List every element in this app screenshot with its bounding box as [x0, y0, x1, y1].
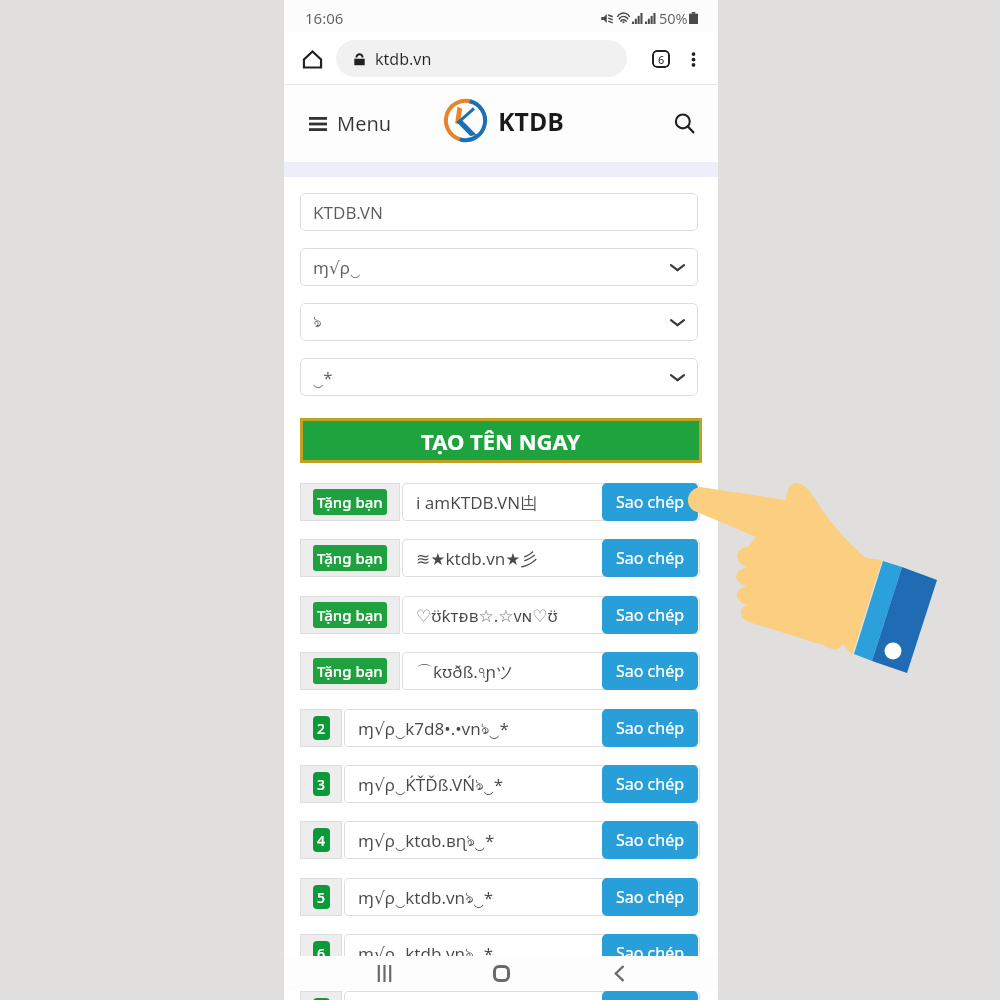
button[interactable]: Tặng bạn — [300, 596, 400, 634]
button[interactable]: Recents — [364, 956, 404, 990]
staticText: ঌ — [313, 314, 322, 331]
button[interactable]: Sao chép — [602, 483, 698, 521]
staticText: 2 — [317, 719, 326, 738]
button[interactable]: Back — [599, 956, 639, 990]
staticText: Sao chép — [616, 491, 685, 513]
button[interactable]: Home — [481, 956, 521, 990]
button[interactable]: Search — [669, 108, 699, 138]
button[interactable]: ♡ʊ̈ƙтᴆʙ☆.☆ᴠɴ♡ʊ̈ — [402, 596, 700, 634]
staticText: Sao chép — [616, 717, 685, 739]
button[interactable]: Sao chép — [602, 652, 698, 690]
button[interactable]: Sao chép — [602, 821, 698, 859]
button[interactable]: 6 — [300, 934, 342, 972]
button[interactable]: Sao chép — [602, 539, 698, 577]
staticText: i amKTDB.VN凷 — [416, 491, 538, 514]
button[interactable]: Sao chép — [602, 934, 698, 972]
staticText: KTDB.VN — [313, 201, 383, 224]
staticText: Sao chép — [616, 886, 685, 908]
button[interactable]: ঌ — [300, 303, 698, 341]
button[interactable]: Tabs — [648, 46, 674, 72]
staticText: 5 — [317, 888, 326, 907]
staticText: Menu — [337, 110, 392, 137]
button[interactable]: ⌒ƙʊðß.ঀɲツ — [402, 652, 700, 690]
staticText: Tặng bạn — [317, 605, 383, 625]
staticText: KTDB — [498, 104, 564, 138]
button[interactable]: Menu — [309, 110, 392, 137]
staticText: 16:06 — [305, 8, 344, 28]
button[interactable]: Tặng bạn — [300, 539, 400, 577]
staticText: Sao chép — [616, 829, 685, 851]
staticText: Sao chép — [616, 942, 685, 964]
button[interactable]: ɱ√ρ‿ktdb.vnঌ‿* — [344, 991, 700, 1000]
staticText: 50% — [659, 8, 688, 28]
staticText: ɱ√ρ‿k7d8•.•vnঌ‿* — [358, 717, 509, 740]
button[interactable]: KTDB.VN — [300, 193, 698, 231]
button[interactable]: Home — [296, 43, 328, 75]
staticText: Sao chép — [616, 547, 685, 569]
button[interactable]: 4 — [300, 821, 342, 859]
staticText: 3 — [317, 775, 326, 794]
staticText: Tặng bạn — [317, 661, 383, 681]
button[interactable]: ɱ√ρ‿ktdb.vnঌ‿* — [344, 878, 700, 916]
staticText: ɱ√ρ‿ — [313, 256, 361, 279]
button[interactable]: ɱ√ρ‿ḰŤĎß.VŃঌ‿* — [344, 765, 700, 803]
button[interactable]: Sao chép — [602, 878, 698, 916]
button[interactable]: Tặng bạn — [300, 652, 400, 690]
button[interactable]: 2 — [300, 709, 342, 747]
button[interactable]: Sao chép — [602, 596, 698, 634]
button[interactable]: Tặng bạn — [300, 483, 400, 521]
button[interactable]: ɱ√ρ‿ — [300, 248, 698, 286]
button[interactable]: TẠO TÊN NGAY — [303, 421, 699, 460]
button[interactable]: ktdb.vn — [336, 40, 627, 77]
staticText: 6 — [317, 944, 326, 963]
button[interactable]: Sao chép — [602, 765, 698, 803]
staticText: ≋★ktdb.vn★彡 — [416, 547, 538, 570]
button[interactable]: Sao chép — [602, 991, 698, 1000]
staticText: Tặng bạn — [317, 492, 383, 512]
staticText: 6 — [658, 52, 665, 67]
staticText: Tặng bạn — [317, 548, 383, 568]
staticText: ⌒ƙʊðß.ঀɲツ — [416, 660, 514, 683]
staticText: TẠO TÊN NGAY — [421, 426, 581, 456]
button[interactable]: ɱ√ρ‿k7d8•.•vnঌ‿* — [344, 709, 700, 747]
staticText: 4 — [317, 831, 326, 850]
button[interactable]: Sao chép — [602, 709, 698, 747]
staticText: ɱ√ρ‿ktdb.vnঌ‿* — [358, 886, 494, 909]
staticText: ktdb.vn — [375, 48, 432, 70]
button[interactable]: 7 — [300, 991, 342, 1000]
staticText: Sao chép — [616, 604, 685, 626]
staticText: ɱ√ρ‿ktdb.vnঌ‿* — [358, 942, 494, 965]
staticText: Sao chép — [616, 660, 685, 682]
button[interactable]: ≋★ktdb.vn★彡 — [402, 539, 700, 577]
staticText: ɱ√ρ‿ḰŤĎß.VŃঌ‿* — [358, 773, 504, 796]
button[interactable]: 3 — [300, 765, 342, 803]
button[interactable]: ɱ√ρ‿ktɑƅ.ʙɳঌ‿* — [344, 821, 700, 859]
staticText: ‿* — [313, 366, 333, 389]
button[interactable]: i amKTDB.VN凷 — [402, 483, 700, 521]
button[interactable]: 5 — [300, 878, 342, 916]
button[interactable]: More options — [680, 46, 706, 72]
button[interactable]: ɱ√ρ‿ktdb.vnঌ‿* — [344, 934, 700, 972]
staticText: ♡ʊ̈ƙтᴆʙ☆.☆ᴠɴ♡ʊ̈ — [416, 604, 558, 627]
button[interactable]: ‿* — [300, 358, 698, 396]
staticText: Sao chép — [616, 773, 685, 795]
staticText: ɱ√ρ‿ktɑƅ.ʙɳঌ‿* — [358, 829, 495, 852]
